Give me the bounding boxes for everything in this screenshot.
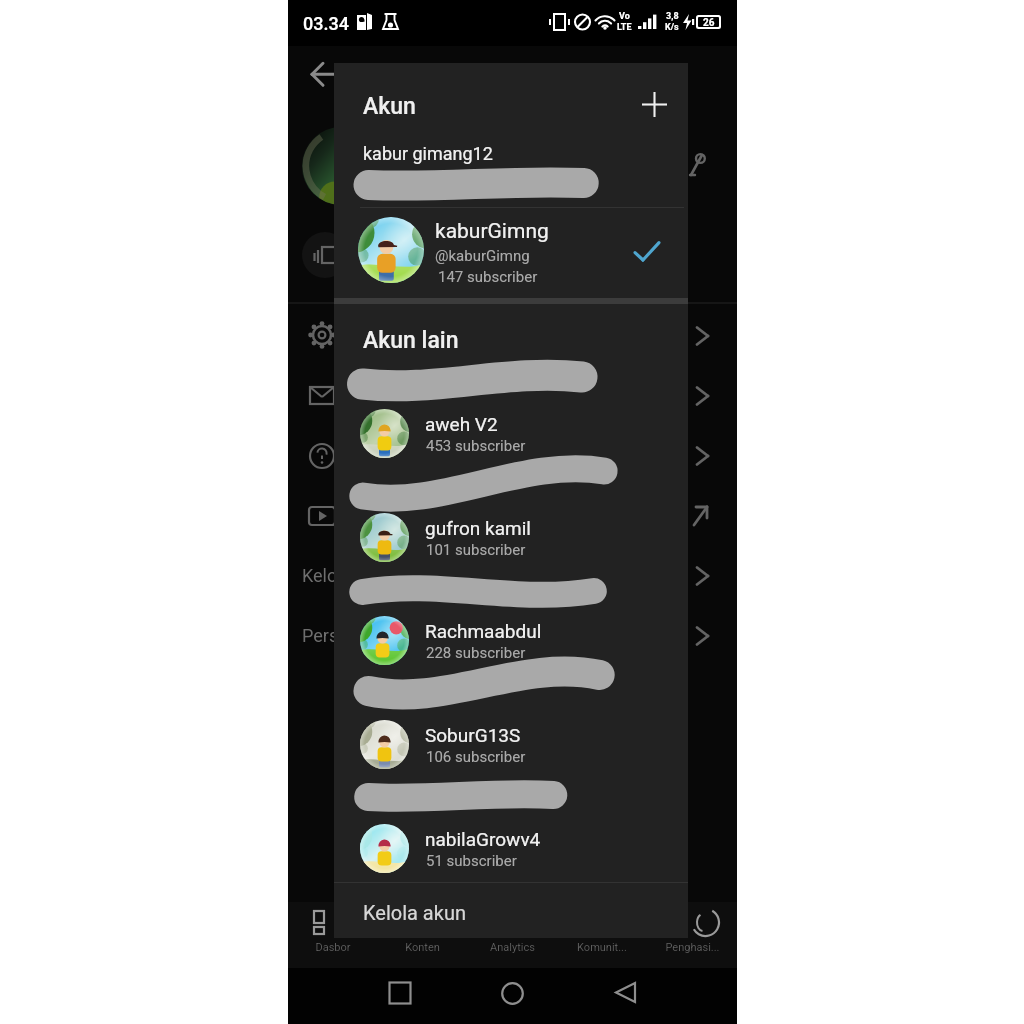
- button[interactable]: Konten: [377, 902, 467, 968]
- staticText: Konten: [405, 941, 440, 954]
- staticText: Analytics: [490, 941, 535, 954]
- staticText: @kaburGimng: [435, 247, 530, 265]
- button[interactable]: kaburGimng: [334, 212, 688, 290]
- button[interactable]: Penghasi...: [647, 902, 737, 968]
- staticText: Perso: [302, 625, 349, 646]
- staticText: Kelola: [302, 565, 352, 586]
- staticText: K/s: [665, 22, 679, 33]
- staticText: Akun: [363, 93, 416, 120]
- staticText: nabilaGrowv4: [425, 828, 541, 850]
- staticText: kabur gimang12: [363, 143, 493, 164]
- staticText: Penghasi...: [665, 941, 720, 954]
- staticText: LTE: [617, 22, 632, 33]
- staticText: gufron kamil: [425, 517, 531, 539]
- staticText: 51 subscriber: [426, 852, 517, 870]
- staticText: 03.34: [303, 13, 349, 34]
- button[interactable]: Back: [615, 982, 636, 1003]
- staticText: aweh V2: [425, 413, 498, 435]
- staticText: Vo: [619, 11, 630, 22]
- staticText: 453 subscriber: [426, 437, 526, 455]
- staticText: 228 subscriber: [426, 644, 526, 662]
- staticText: Komunit...: [577, 941, 627, 954]
- staticText: 3,8: [666, 11, 679, 22]
- button[interactable]: Analytics: [467, 902, 557, 968]
- staticText: 147 subscriber: [438, 268, 538, 286]
- button[interactable]: aweh V2: [334, 393, 688, 469]
- staticText: SoburG13S: [425, 724, 521, 746]
- button[interactable]: Kelola akun: [334, 883, 688, 938]
- staticText: Rachmaabdul: [425, 620, 542, 642]
- button[interactable]: SoburG13S: [334, 704, 688, 780]
- staticText: 106 subscriber: [426, 748, 526, 766]
- button[interactable]: Rachmaabdul: [334, 600, 688, 676]
- button[interactable]: Recents: [389, 982, 411, 1004]
- button[interactable]: Komunit...: [557, 902, 647, 968]
- staticText: Dasbor: [315, 941, 351, 954]
- staticText: Akun lain: [363, 327, 459, 354]
- button[interactable]: nabilaGrowv4: [334, 808, 688, 884]
- staticText: kaburGimng: [435, 219, 549, 244]
- staticText: Kelola akun: [363, 901, 466, 924]
- button[interactable]: Tambah akun: [632, 82, 676, 126]
- staticText: 26: [703, 17, 715, 27]
- button[interactable]: Dasbor: [288, 902, 377, 968]
- staticText: 101 subscriber: [426, 541, 526, 559]
- button[interactable]: Home: [501, 982, 524, 1005]
- button[interactable]: gufron kamil: [334, 497, 688, 573]
